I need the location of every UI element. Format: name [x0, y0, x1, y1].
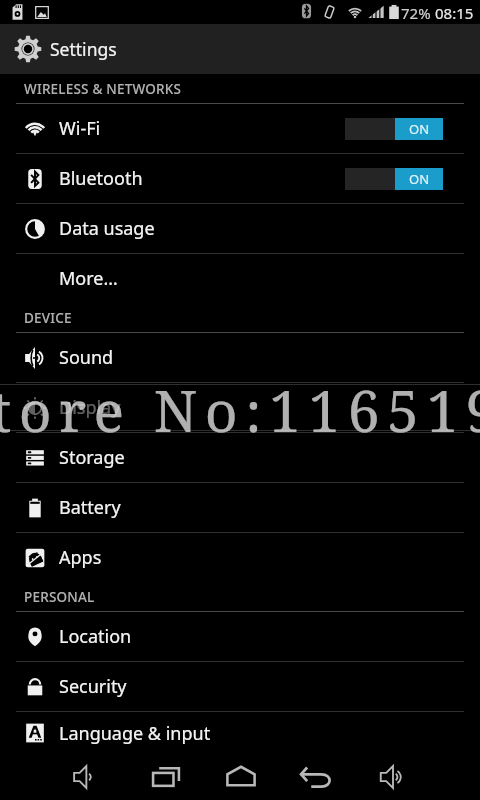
button[interactable]: ON [345, 168, 443, 190]
button[interactable]: Home [220, 756, 261, 798]
button[interactable]: Display [0, 383, 480, 432]
staticText: Display [59, 395, 121, 420]
button[interactable]: Language & input [0, 712, 480, 754]
button[interactable]: ON [345, 118, 443, 140]
staticText: Data usage [59, 216, 155, 241]
staticText: ON [409, 120, 430, 138]
staticText: 72% [401, 3, 431, 23]
button[interactable]: Volume down [64, 756, 105, 798]
button[interactable]: Volume up [372, 756, 413, 798]
staticText: PERSONAL [24, 588, 95, 606]
button[interactable]: Recent apps [145, 756, 186, 798]
button[interactable]: Sound [0, 333, 480, 382]
button[interactable]: Security [0, 662, 480, 711]
button[interactable]: Wi-Fi [0, 104, 480, 153]
button[interactable]: More… [0, 254, 480, 303]
staticText: Wi-Fi [59, 116, 101, 141]
staticText: 08:15 [435, 3, 474, 23]
button[interactable]: Location [0, 612, 480, 661]
staticText: Bluetooth [59, 166, 143, 191]
staticText: store No:116519 [0, 371, 480, 449]
staticText: Security [59, 674, 127, 699]
staticText: Apps [59, 545, 102, 570]
button[interactable]: Back [295, 756, 336, 798]
staticText: WIRELESS & NETWORKS [24, 80, 182, 98]
staticText: Sound [59, 345, 114, 370]
staticText: DEVICE [24, 309, 72, 327]
staticText: Storage [59, 445, 125, 470]
staticText: ON [409, 170, 430, 188]
button[interactable]: Bluetooth [0, 154, 480, 203]
staticText: Language & input [59, 721, 211, 746]
button[interactable]: Data usage [0, 204, 480, 253]
staticText: Location [59, 624, 132, 649]
staticText: Battery [59, 495, 121, 520]
button[interactable]: Battery [0, 483, 480, 532]
button[interactable]: Apps [0, 533, 480, 582]
staticText: More… [59, 266, 118, 291]
button[interactable]: Storage [0, 433, 480, 482]
staticText: Settings [50, 37, 117, 61]
